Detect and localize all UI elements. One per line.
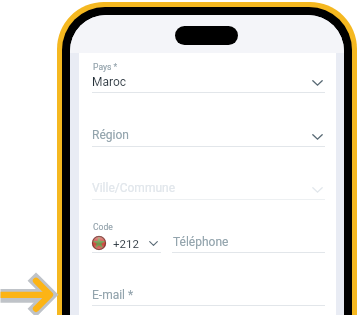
- other: Arrow pointing right: [0, 270, 58, 315]
- staticText: Maroc: [92, 75, 127, 89]
- staticText: Ville/Commune: [92, 181, 176, 195]
- button[interactable]: Telephone: [172, 229, 325, 255]
- staticText: Code: [93, 222, 113, 232]
- staticText: Pays *: [93, 62, 118, 72]
- staticText: Région: [92, 128, 129, 142]
- button[interactable]: Pays: [92, 57, 325, 95]
- staticText: Téléphone: [173, 235, 229, 249]
- button[interactable]: Code: [92, 218, 161, 256]
- staticText: +212: [113, 237, 139, 250]
- button[interactable]: Region: [92, 111, 325, 149]
- button[interactable]: Ville/Commune: [92, 164, 325, 202]
- staticText: E-mail *: [92, 288, 134, 302]
- button[interactable]: E-mail: [92, 270, 325, 308]
